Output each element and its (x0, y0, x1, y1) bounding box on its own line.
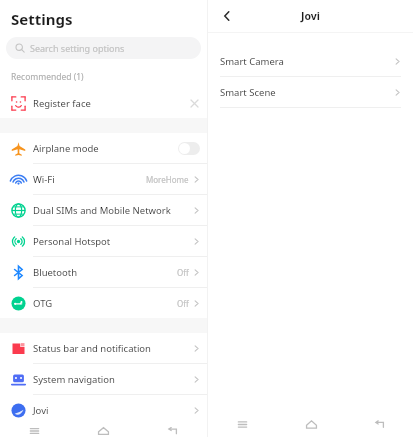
staticText: Jovi (301, 9, 320, 23)
staticText: Jovi (33, 404, 193, 417)
button[interactable]: Register face (0, 88, 207, 118)
button[interactable]: Dismiss recommendation (188, 97, 200, 109)
button[interactable]: Status bar and notification (0, 333, 207, 363)
staticText: Status bar and notification (33, 342, 193, 355)
button[interactable]: Search setting options (6, 37, 201, 59)
button[interactable]: Personal Hotspot (0, 226, 207, 256)
button[interactable]: Home (69, 425, 138, 437)
staticText: Settings (11, 9, 73, 29)
button[interactable]: Smart Camera (208, 46, 413, 76)
button[interactable]: Dual SIMs and Mobile Network (0, 195, 207, 225)
button[interactable]: Recents (208, 411, 277, 437)
staticText: System navigation (33, 373, 193, 386)
button[interactable]: Airplane mode (0, 133, 207, 163)
button[interactable]: Back (217, 6, 237, 26)
button[interactable]: Smart Scene (208, 77, 413, 107)
staticText: Off (177, 298, 189, 309)
staticText: MoreHome (146, 174, 189, 185)
button[interactable]: Bluetooth (0, 257, 207, 287)
staticText: Dual SIMs and Mobile Network (33, 204, 193, 217)
staticText: Bluetooth (33, 266, 177, 279)
staticText: Search setting options (30, 42, 125, 54)
staticText: Smart Scene (220, 86, 394, 99)
button[interactable]: Wi-Fi (0, 164, 207, 194)
button[interactable]: Back (345, 411, 413, 437)
button[interactable]: Back (138, 425, 207, 437)
staticText: OTG (33, 297, 177, 310)
button[interactable]: Home (277, 411, 345, 437)
button[interactable]: Jovi (0, 395, 207, 425)
staticText: Smart Camera (220, 55, 394, 68)
staticText: Register face (33, 97, 188, 110)
button[interactable]: Recents (0, 425, 69, 437)
button[interactable]: Airplane mode toggle (178, 142, 200, 155)
staticText: Wi-Fi (33, 173, 146, 186)
staticText: Recommended (1) (11, 71, 84, 83)
staticText: Airplane mode (33, 142, 178, 155)
staticText: Off (177, 267, 189, 278)
button[interactable]: OTG (0, 288, 207, 318)
button[interactable]: System navigation (0, 364, 207, 394)
staticText: Personal Hotspot (33, 235, 193, 248)
